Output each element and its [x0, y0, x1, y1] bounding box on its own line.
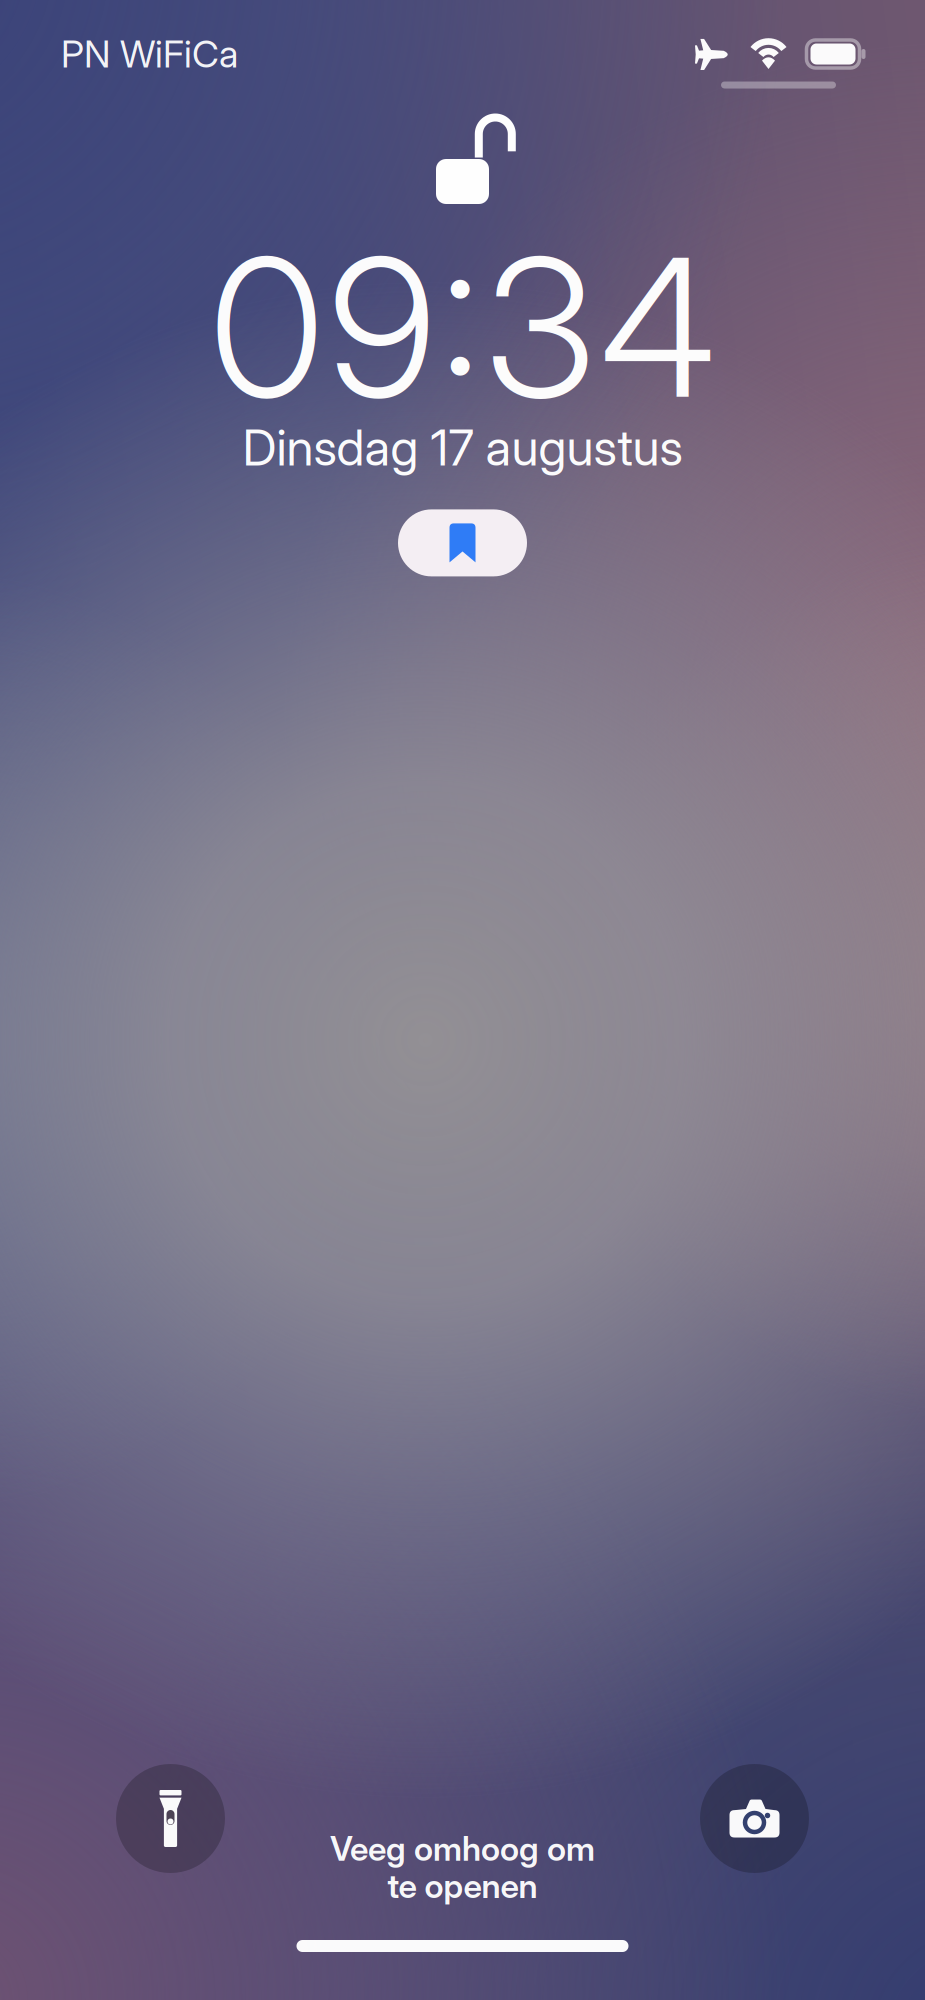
staticText: te openen	[387, 1866, 537, 1906]
button[interactable]: Camera	[700, 1764, 809, 1873]
staticText: Dinsdag 17 augustus	[242, 418, 682, 477]
staticText: Veeg omhoog om	[330, 1828, 595, 1869]
staticText: 09:34	[210, 212, 715, 443]
staticText: PN WiFiCa	[61, 31, 238, 77]
button[interactable]: Flashlight	[116, 1764, 225, 1873]
